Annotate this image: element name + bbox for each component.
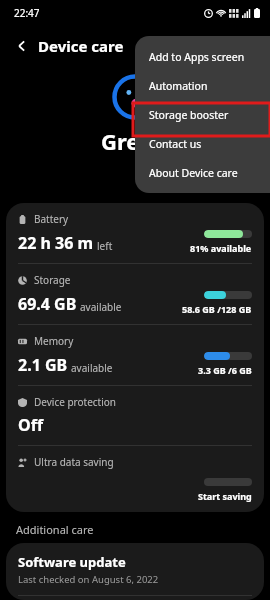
button[interactable]: Back bbox=[8, 32, 36, 60]
staticText: Automation bbox=[149, 79, 208, 93]
staticText: Additional care bbox=[16, 522, 94, 537]
staticText: Contact us bbox=[149, 137, 202, 151]
button[interactable]: Memory bbox=[18, 325, 252, 385]
button[interactable]: Add to Apps screen bbox=[135, 42, 270, 71]
staticText: About Device care bbox=[149, 166, 238, 180]
staticText: 22 h 36 m bbox=[18, 232, 94, 254]
staticText: Add to Apps screen bbox=[149, 50, 245, 64]
staticText: 2.1 GB bbox=[18, 354, 68, 376]
staticText: 3.3 GB /6 GB bbox=[198, 364, 252, 376]
button[interactable]: Device protection bbox=[18, 386, 252, 445]
staticText: left bbox=[97, 239, 113, 253]
staticText: Memory bbox=[34, 334, 74, 348]
button[interactable]: Storage booster bbox=[135, 100, 270, 129]
staticText: Storage bbox=[34, 273, 71, 287]
staticText: available bbox=[71, 361, 113, 375]
staticText: Software update bbox=[18, 553, 126, 571]
staticText: Device protection bbox=[34, 395, 117, 409]
staticText: Battery bbox=[34, 212, 69, 226]
button[interactable]: Ultra data saving bbox=[18, 446, 252, 512]
button[interactable]: Storage bbox=[18, 264, 252, 324]
staticText: 81% available bbox=[190, 242, 252, 254]
button[interactable]: Contact us bbox=[135, 129, 270, 158]
button[interactable]: Automation bbox=[135, 71, 270, 100]
button[interactable]: Battery bbox=[18, 203, 252, 263]
button[interactable]: Software update bbox=[18, 543, 252, 595]
staticText: Great! bbox=[101, 126, 169, 156]
staticText: Last checked on August 6, 2022 bbox=[18, 573, 159, 586]
staticText: Storage booster bbox=[149, 108, 229, 122]
button[interactable]: About Device care bbox=[135, 158, 270, 187]
staticText: Off bbox=[18, 414, 44, 436]
staticText: Device care bbox=[38, 36, 124, 56]
staticText: 58.6 GB /128 GB bbox=[182, 303, 252, 315]
staticText: available bbox=[80, 300, 122, 314]
staticText: 69.4 GB bbox=[18, 293, 77, 315]
staticText: 22:47 bbox=[14, 6, 40, 20]
staticText: Ultra data saving bbox=[34, 455, 114, 469]
staticText: Start saving bbox=[198, 490, 252, 502]
